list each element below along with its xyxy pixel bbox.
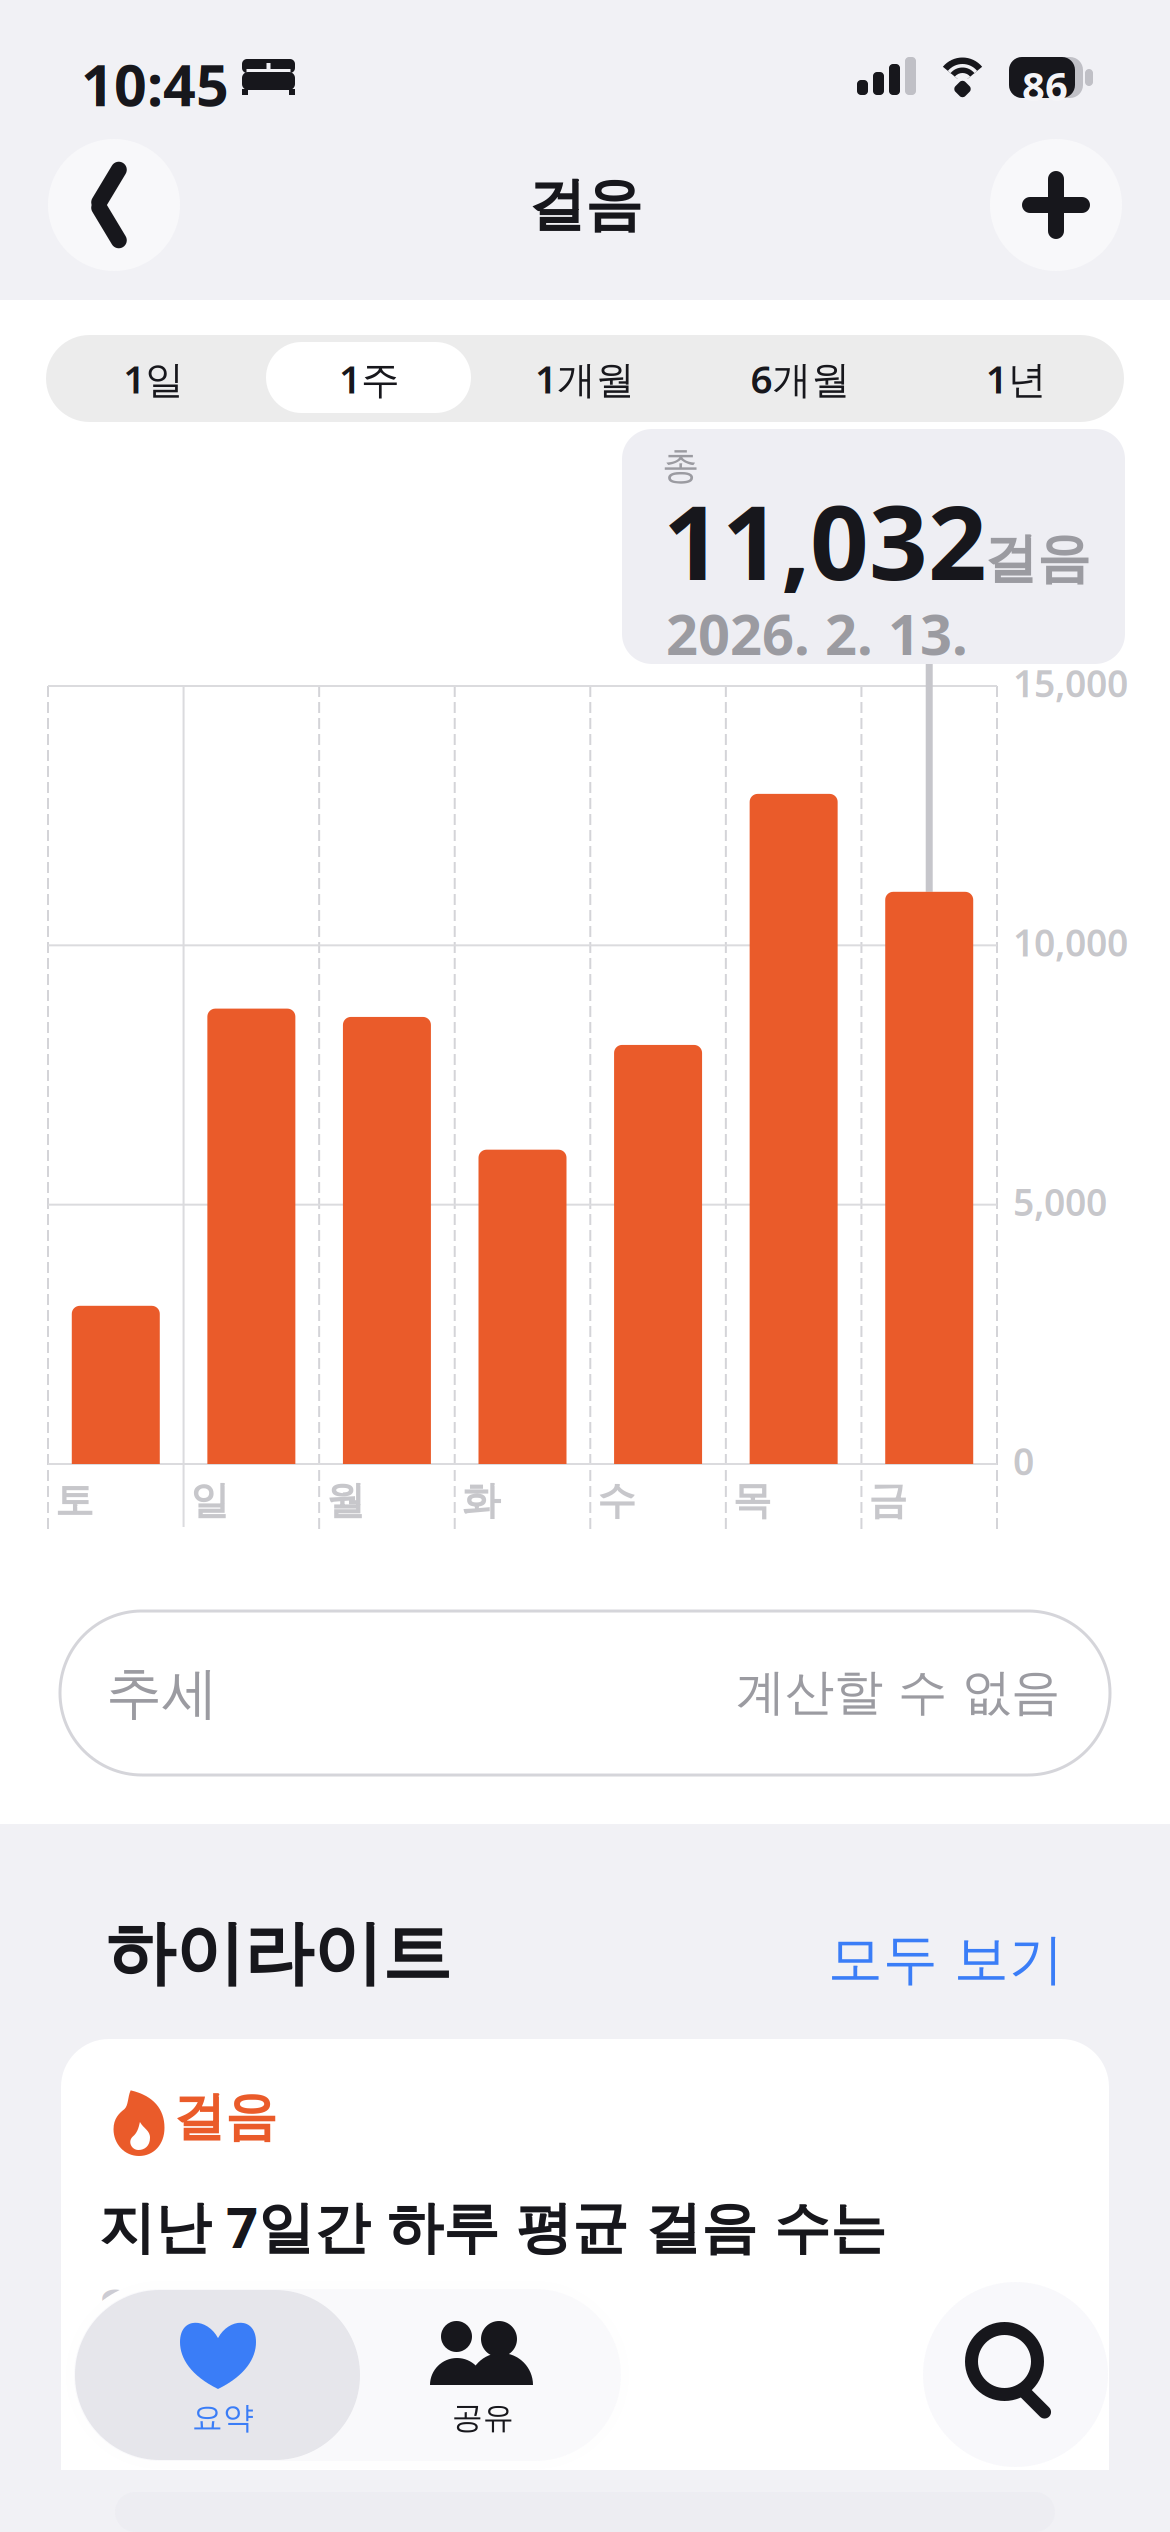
staticText: 계산할 수 없음 [736,1662,1060,1723]
staticText: 5,000 [1013,1177,1107,1226]
staticText: 월 [326,1477,365,1524]
staticText: 1일 [123,353,184,404]
staticText: 1주 [339,353,400,404]
staticText: 수 [597,1477,636,1524]
staticText: 금 [868,1477,907,1524]
staticText: 모두 보기 [828,1926,1064,1993]
staticText: 1개월 [535,353,635,404]
button[interactable]: 추가 [990,139,1122,271]
button[interactable]: 검색 [923,2282,1108,2467]
button[interactable]: 1개월 [477,335,693,422]
staticText: 1년 [986,353,1047,404]
staticText: 추세 [106,1659,218,1728]
button[interactable]: 모두 보기 [828,1926,1064,1993]
staticText: 걸음 [984,526,1090,591]
staticText: 15,000 [1013,658,1128,708]
button[interactable]: 공유 [360,2281,629,2469]
staticText: 공유 [452,2399,514,2437]
staticText: 화 [462,1477,501,1524]
staticText: 총 [662,443,699,489]
staticText: 0 [1013,1436,1034,1486]
staticText: 6개월 [751,353,851,404]
staticText: 목 [733,1477,772,1524]
button[interactable]: 요약 [75,2281,360,2469]
staticText: 10,000 [1013,917,1128,967]
button[interactable]: 추세 [60,1611,1110,1775]
staticText: 8,363걸음 입니다. [99,2271,556,2345]
staticText: 11,032 [663,472,987,608]
button[interactable]: 1년 [908,335,1124,422]
button[interactable]: 뒤로 [48,139,180,271]
staticText: 요약 [192,2399,254,2437]
button[interactable]: 걸음 [61,2039,1109,2532]
button[interactable]: 6개월 [693,335,908,422]
staticText: 2026. 2. 13. [666,596,968,670]
staticText: 10:45 [81,46,229,122]
staticText: 토 [55,1477,94,1524]
button[interactable]: 1주 [262,335,477,422]
staticText: 일 [191,1477,230,1524]
staticText: 지난 7일간 하루 평균 걸음 수는 [99,2189,886,2263]
staticText: 86 [1022,59,1068,112]
button[interactable]: 1일 [46,335,262,422]
staticText: 하이라이트 [106,1911,451,1996]
staticText: 걸음 [528,170,642,240]
staticText: 걸음 [173,2085,277,2149]
